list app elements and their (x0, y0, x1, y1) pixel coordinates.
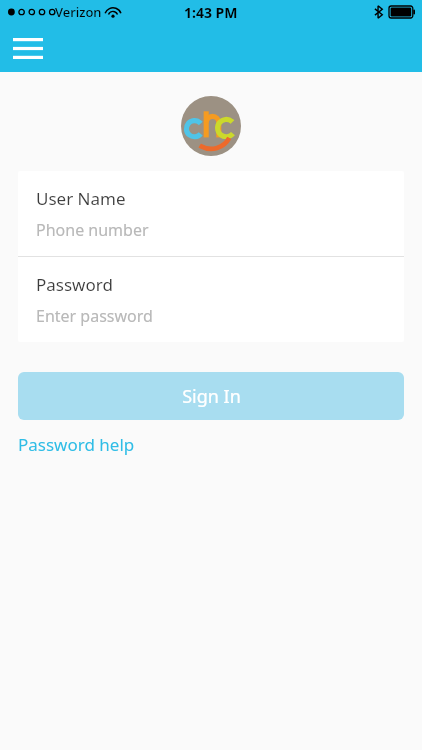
staticText: 1:43 PM (184, 3, 238, 22)
button[interactable]: Password help (18, 429, 135, 460)
staticText: User Name (36, 187, 126, 210)
staticText: Enter password (36, 305, 153, 327)
staticText: Password help (18, 433, 135, 456)
button[interactable]: Password (18, 257, 404, 342)
staticText: Sign In (182, 384, 241, 409)
button[interactable]: Open navigation menu (6, 26, 50, 70)
button[interactable]: User Name (18, 171, 404, 256)
staticText: Verizon (55, 3, 102, 21)
staticText: Password (36, 273, 113, 296)
staticText: Phone number (36, 219, 149, 241)
button[interactable]: Sign In (18, 372, 404, 420)
